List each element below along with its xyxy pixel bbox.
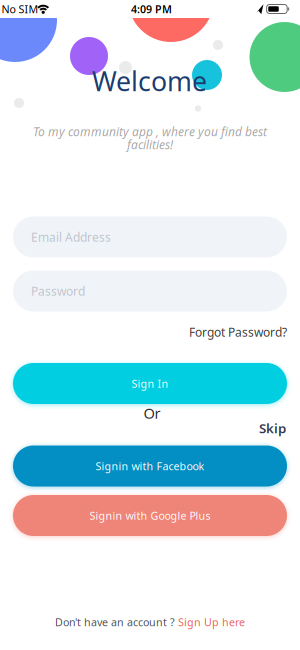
staticText: Or — [143, 403, 160, 423]
staticText: facilities! — [127, 136, 173, 152]
staticText: Welcome — [92, 63, 207, 99]
button[interactable]: Signin with Facebook — [13, 445, 287, 486]
staticText: Skip — [259, 419, 286, 437]
button[interactable]: Email Address — [13, 216, 287, 257]
button[interactable]: Sign Up here — [178, 615, 245, 629]
button[interactable]: Skip — [259, 419, 286, 437]
staticText: Don't have an account ? — [55, 615, 175, 629]
staticText: No SIM — [1, 2, 38, 16]
staticText: 4:09 PM — [131, 2, 172, 16]
button[interactable]: Sign In — [13, 363, 287, 404]
staticText: Signin with Google Plus — [89, 508, 210, 523]
staticText: Password — [31, 283, 85, 299]
staticText: Email Address — [31, 229, 111, 245]
staticText: Signin with Facebook — [95, 459, 204, 473]
button[interactable]: Password — [13, 270, 287, 311]
staticText: Sign In — [131, 376, 168, 391]
button[interactable]: Signin with Google Plus — [13, 495, 287, 536]
staticText: Sign Up here — [178, 615, 245, 629]
button[interactable]: Forgot Password? — [189, 324, 287, 340]
staticText: To my community app , where you find bes… — [33, 123, 267, 139]
staticText: Forgot Password? — [189, 324, 287, 340]
